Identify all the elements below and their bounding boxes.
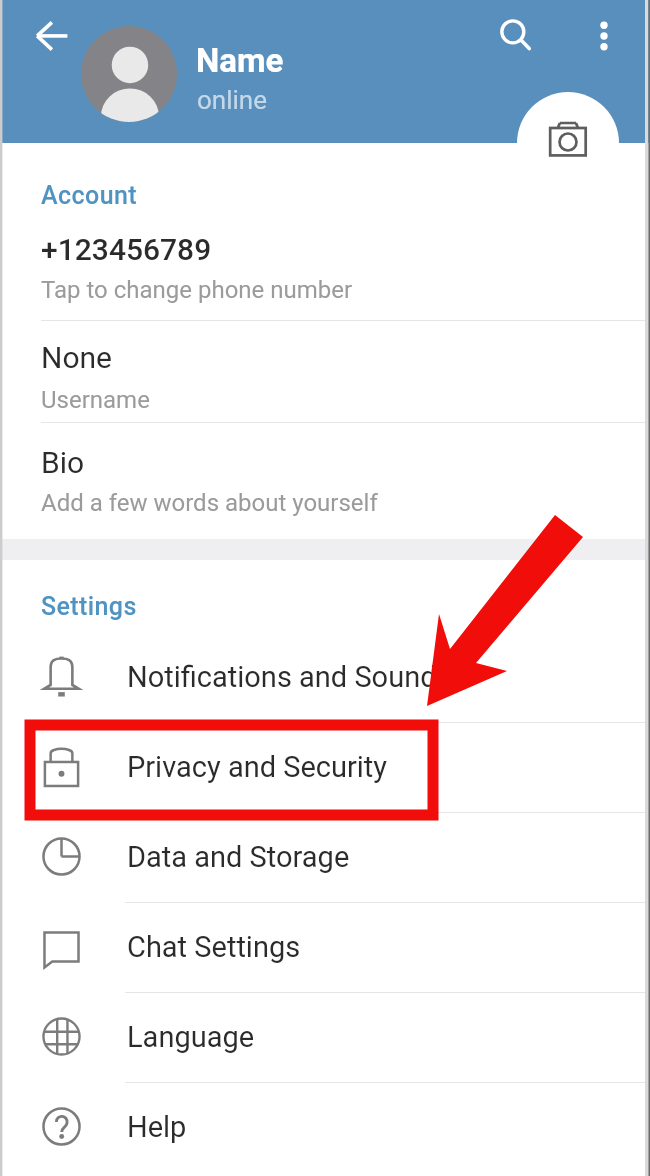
staticText: Privacy and Security	[127, 750, 388, 784]
button[interactable]: Language	[0, 992, 650, 1082]
button[interactable]: Data and Storage	[0, 812, 650, 902]
button[interactable]: Chat Settings	[0, 902, 650, 992]
staticText: Notifications and Sounds	[127, 660, 452, 694]
staticText: Language	[127, 1020, 255, 1054]
staticText: Username	[41, 386, 150, 414]
staticText: None	[41, 340, 112, 375]
button[interactable]: Search	[483, 2, 547, 66]
button[interactable]: More options	[576, 8, 632, 64]
staticText: +123456789	[41, 232, 212, 267]
staticText: Data and Storage	[127, 840, 350, 874]
button[interactable]: Bio	[0, 423, 650, 539]
button[interactable]: +123456789	[0, 215, 650, 320]
staticText: Help	[127, 1110, 187, 1144]
staticText: Bio	[41, 445, 85, 480]
button[interactable]: Back	[24, 8, 82, 66]
staticText: Name	[196, 41, 284, 80]
button[interactable]: None	[0, 321, 650, 422]
staticText: Chat Settings	[127, 930, 301, 964]
staticText: Account	[41, 181, 137, 210]
staticText: Tap to change phone number	[41, 276, 353, 304]
button[interactable]: Change profile photo	[517, 92, 619, 194]
button[interactable]: Help	[0, 1082, 650, 1172]
button[interactable]: Privacy and Security	[0, 722, 650, 812]
staticText: Settings	[41, 592, 137, 621]
staticText: Add a few words about yourself	[41, 489, 378, 517]
button[interactable]: Notifications and Sounds	[0, 632, 650, 722]
button[interactable]: Profile photo	[81, 26, 177, 122]
staticText: online	[197, 85, 267, 115]
